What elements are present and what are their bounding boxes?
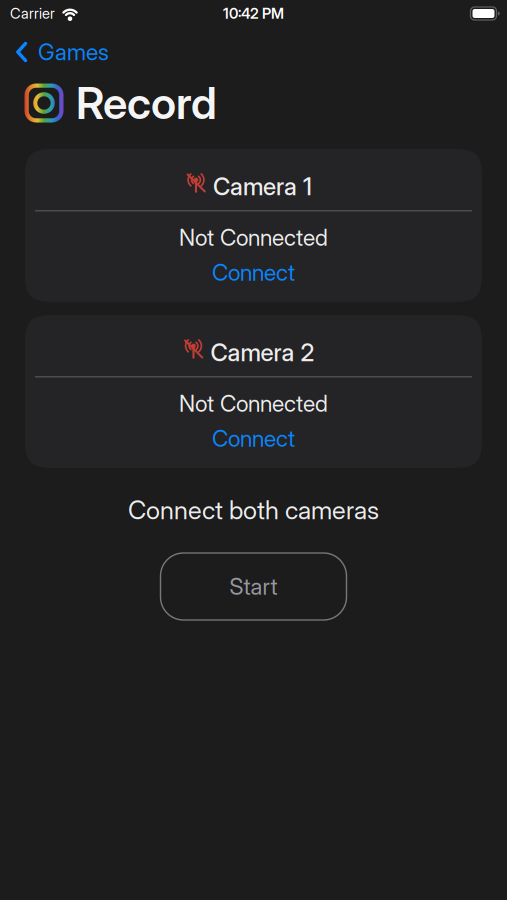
button[interactable]: Games — [0, 39, 109, 65]
button[interactable]: Start — [160, 553, 346, 620]
staticText: Connect — [212, 259, 295, 286]
staticText: Not Connected — [179, 390, 328, 417]
staticText: Connect — [212, 425, 295, 452]
button[interactable]: Connect — [212, 257, 295, 287]
staticText: Camera 1 — [213, 172, 312, 201]
staticText: Record — [76, 77, 217, 129]
button[interactable]: Connect — [212, 423, 295, 453]
staticText: Camera 2 — [210, 338, 314, 367]
staticText: Connect both cameras — [128, 495, 379, 525]
staticText: Carrier — [10, 5, 55, 22]
staticText: Start — [229, 573, 277, 600]
staticText: Games — [38, 39, 109, 65]
staticText: Not Connected — [179, 224, 328, 251]
staticText: 10:42 PM — [223, 5, 284, 22]
